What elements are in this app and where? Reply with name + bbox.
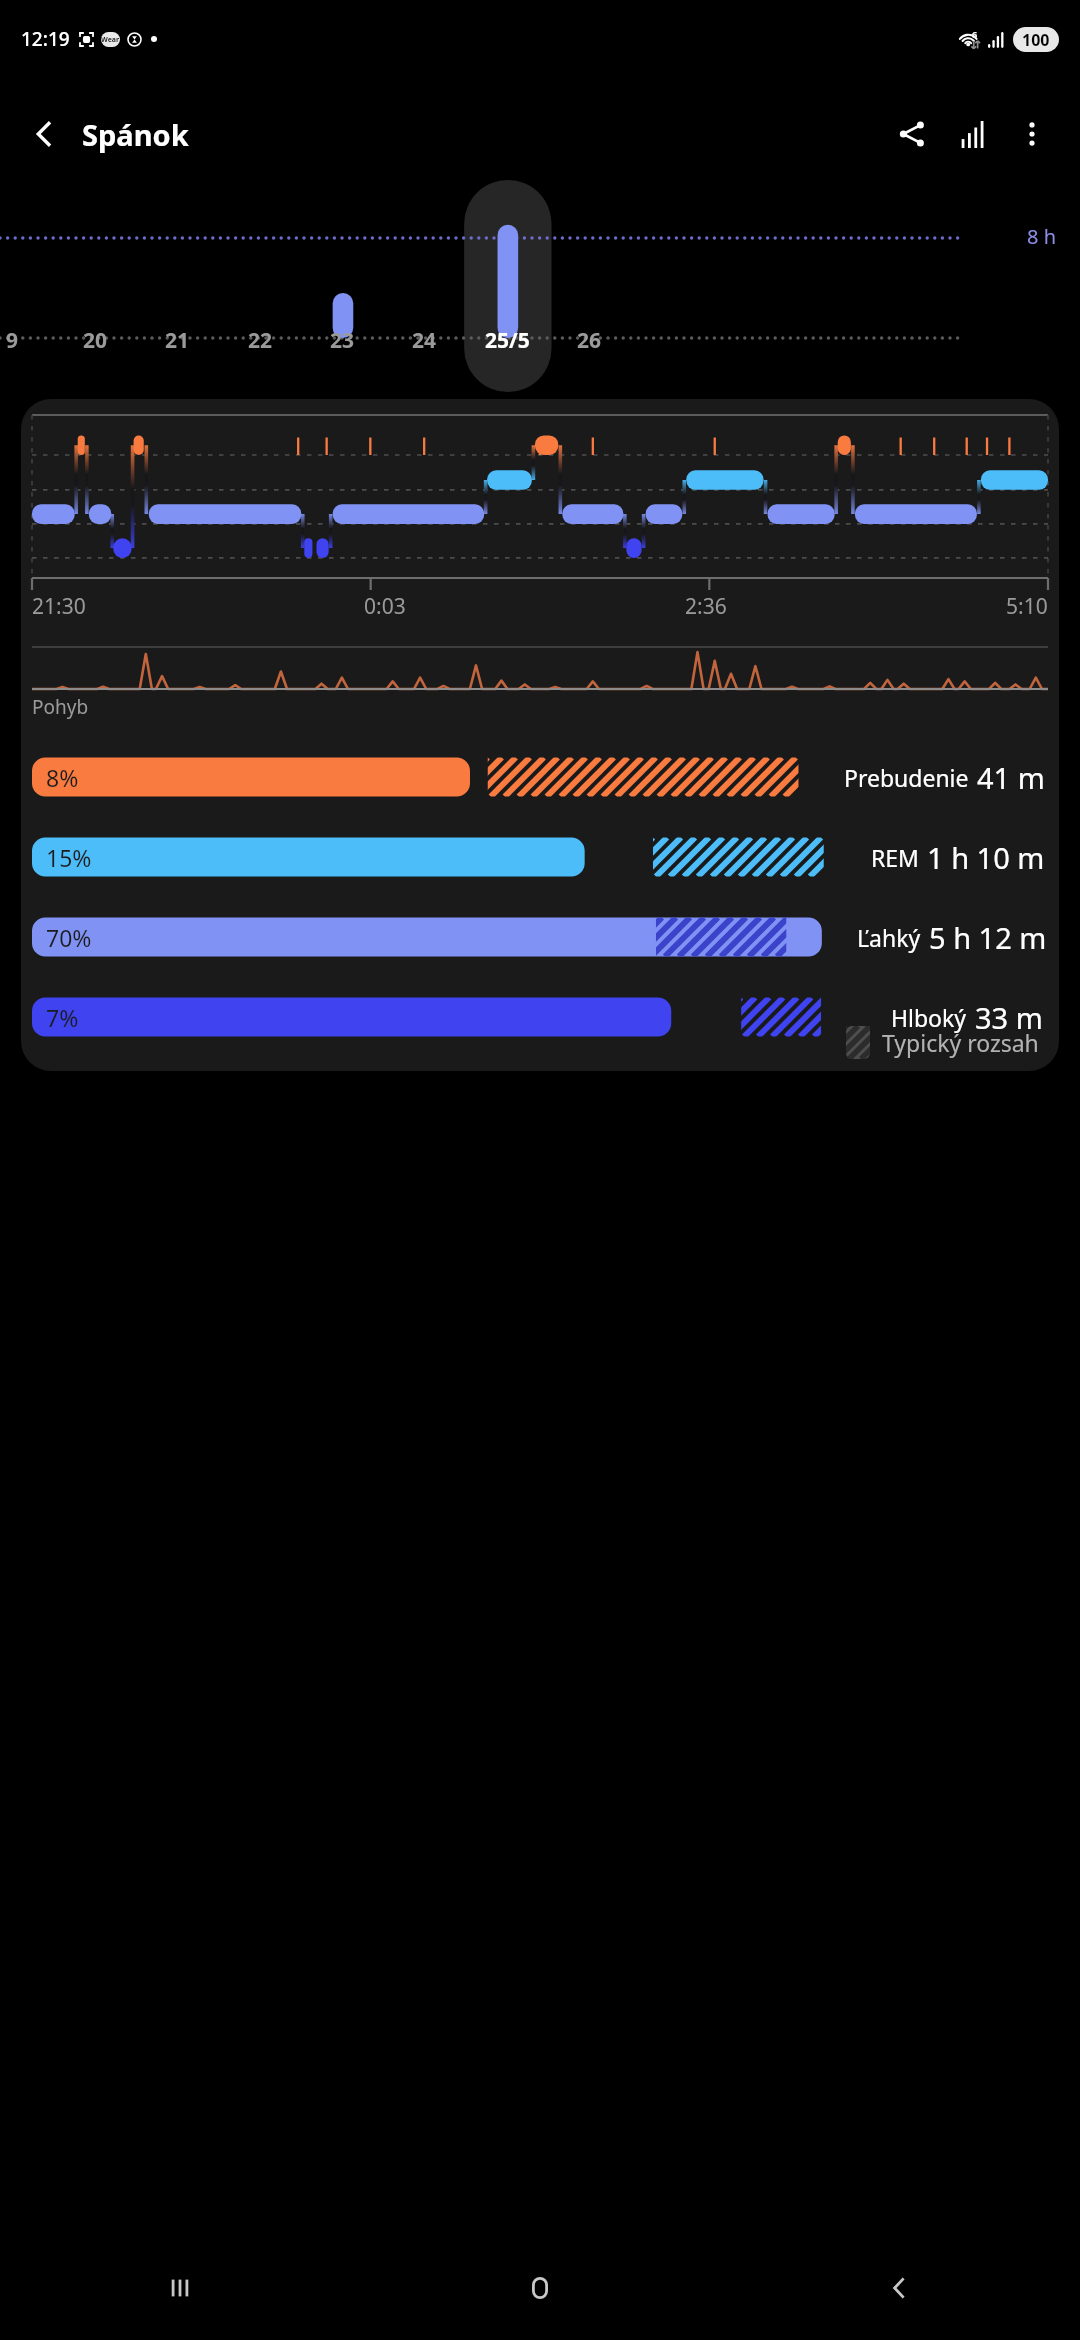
button[interactable]: Back	[720, 2236, 1080, 2340]
staticText: 23	[330, 326, 355, 355]
staticText: 100	[1022, 29, 1050, 51]
staticText: 15%	[46, 842, 92, 873]
staticText: 7%	[46, 1002, 79, 1033]
button[interactable]: 8%	[32, 752, 1048, 802]
staticText: 12:19	[21, 26, 70, 52]
staticText: 8%	[46, 762, 79, 793]
staticText: 5:10	[1006, 592, 1048, 621]
button[interactable]: 9	[0, 190, 1080, 380]
staticText: Pohyb	[32, 694, 89, 720]
staticText: 2:36	[685, 592, 727, 621]
staticText: 21	[165, 326, 190, 355]
staticText: 26	[577, 326, 602, 355]
staticText: 0:03	[364, 592, 406, 621]
button[interactable]: Back	[16, 105, 74, 163]
staticText: 6	[972, 28, 978, 40]
button[interactable]: 15%	[32, 832, 1048, 882]
button[interactable]: Share	[882, 104, 942, 164]
button[interactable]: Home	[360, 2236, 720, 2340]
button[interactable]: Recent apps	[0, 2236, 360, 2340]
staticText: Spánok	[82, 115, 189, 154]
button[interactable]: Statistics	[942, 104, 1002, 164]
staticText: 41 m	[977, 758, 1045, 797]
staticText: Typický rozsah	[882, 1027, 1039, 1058]
staticText: 25/5	[485, 326, 530, 355]
staticText: Wear	[101, 35, 120, 45]
staticText: 22	[248, 326, 273, 355]
button[interactable]: 7%	[32, 992, 1048, 1042]
staticText: 33 m	[975, 998, 1043, 1037]
staticText: 9	[6, 326, 19, 355]
staticText: 1 h 10 m	[927, 838, 1045, 877]
staticText: 20	[83, 326, 108, 355]
staticText: REM	[871, 842, 919, 873]
staticText: Ľahký	[857, 922, 921, 953]
staticText: Prebudenie	[844, 762, 969, 793]
staticText: 21:30	[32, 592, 86, 621]
staticText: 5 h 12 m	[929, 918, 1047, 957]
staticText: 8 h	[1027, 223, 1056, 250]
staticText: 70%	[46, 922, 92, 953]
staticText: 24	[412, 326, 437, 355]
button[interactable]: 21:30	[21, 399, 1059, 1071]
button[interactable]: 70%	[32, 912, 1048, 962]
staticText: Hlboký	[891, 1002, 967, 1033]
button[interactable]: More options	[1002, 104, 1062, 164]
